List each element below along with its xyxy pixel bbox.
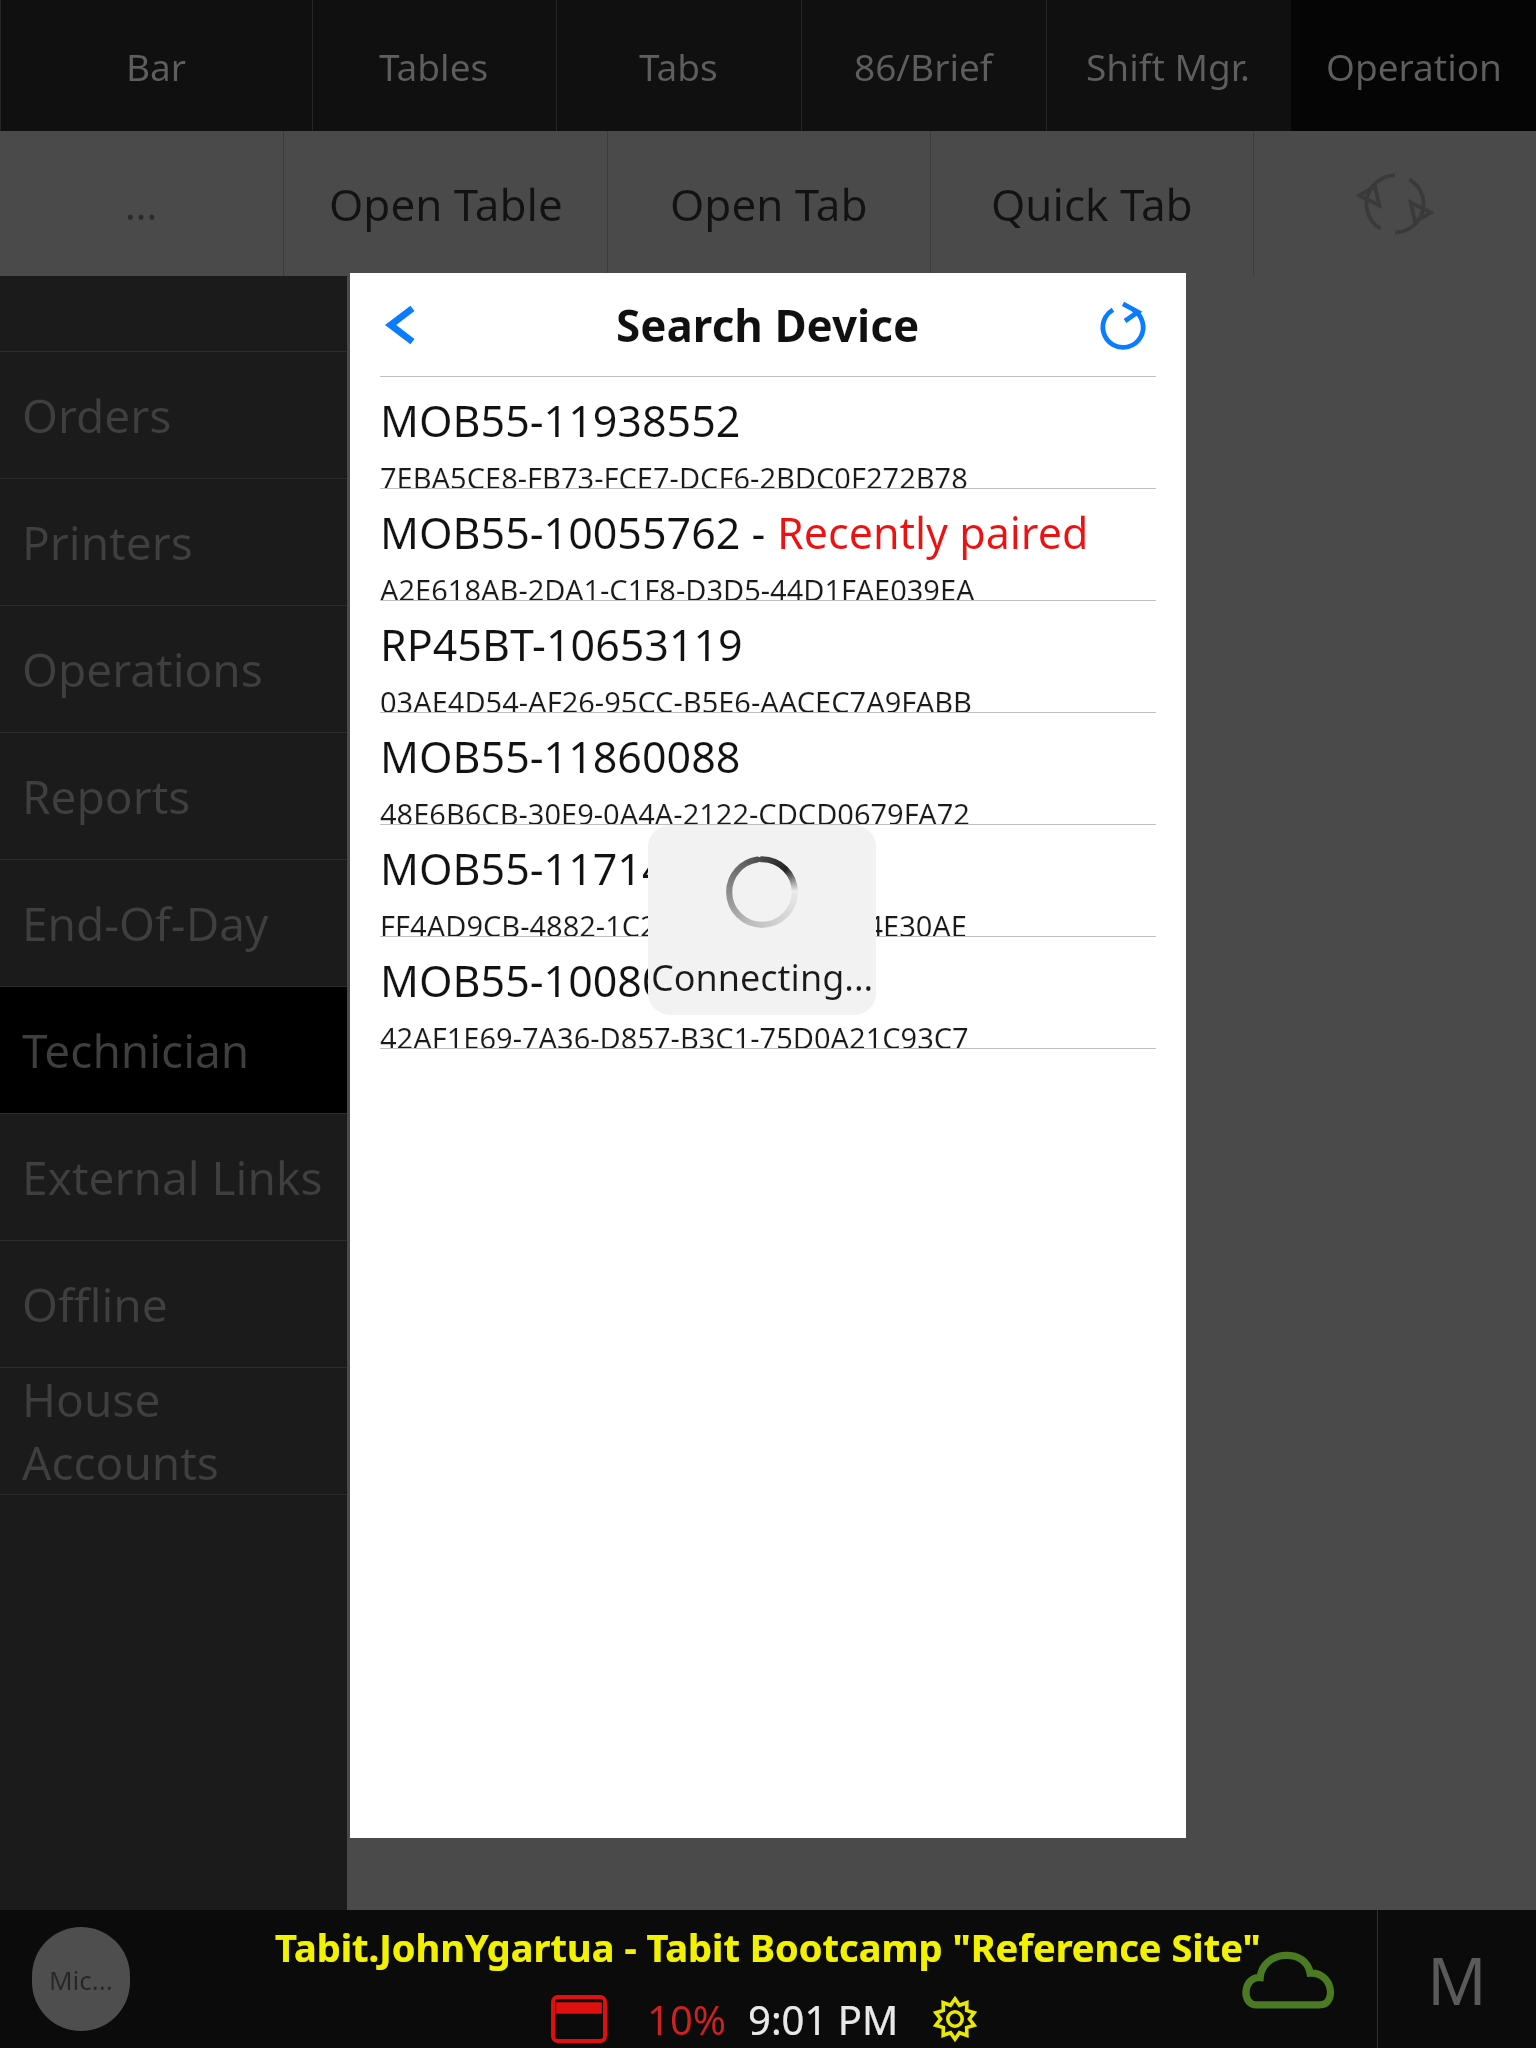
staticText: MOB55-11938552	[380, 391, 741, 450]
button[interactable]: Technician	[0, 987, 347, 1113]
button[interactable]: Printers	[0, 479, 347, 605]
button[interactable]: Offline	[0, 1241, 347, 1367]
button[interactable]: Bar	[0, 0, 312, 131]
button[interactable]: MOB55-11714987	[350, 825, 1186, 936]
staticText: RP45BT-10653119	[380, 615, 743, 674]
button[interactable]: MOB55-11860088	[350, 713, 1186, 824]
button[interactable]: RP45BT-10653119	[350, 601, 1186, 712]
staticText: Quick Tab	[991, 174, 1193, 234]
staticText: MOB55-10055762 -	[380, 503, 777, 562]
button[interactable]: Open Tab	[608, 131, 930, 276]
staticText: M	[1427, 1934, 1487, 2024]
staticText: 9:01 PM	[748, 1992, 899, 2046]
staticText: Operations	[22, 638, 263, 701]
staticText: Tabs	[639, 41, 718, 91]
button[interactable]: Tables	[312, 0, 556, 131]
staticText: 42AF1E69-7A36-D857-B3C1-75D0A21C93C7	[380, 1018, 969, 1048]
staticText: Orders	[22, 384, 172, 447]
staticText: 86/Brief	[854, 41, 993, 91]
button[interactable]: Reports	[0, 733, 347, 859]
staticText: Shift Mgr.	[1086, 41, 1251, 91]
button[interactable]: Mic...	[32, 1927, 130, 2031]
button[interactable]: Cloud status	[1201, 1910, 1377, 2048]
button[interactable]: Operation	[1291, 0, 1536, 131]
button[interactable]: House Accounts	[0, 1368, 347, 1494]
staticText: Mic...	[49, 1962, 113, 1997]
staticText: Tables	[379, 41, 489, 91]
staticText: FF4AD9CB-4882-1C2F-D4B7-A2CC5F4E30AE	[380, 906, 967, 936]
button[interactable]: End-Of-Day	[0, 860, 347, 986]
staticText: Operation	[1326, 41, 1502, 91]
staticText: Search Device	[616, 295, 920, 355]
button[interactable]: Shift Mgr.	[1046, 0, 1291, 131]
button[interactable]: 86/Brief	[801, 0, 1046, 131]
staticText: External Links	[22, 1146, 323, 1209]
staticText: Reports	[22, 765, 191, 828]
button[interactable]: Back	[362, 286, 440, 364]
staticText: 7EBA5CE8-FB73-FCE7-DCF6-2BDC0F272B78	[380, 458, 968, 488]
button[interactable]: MOB55-10080543	[350, 937, 1186, 1048]
staticText: Open Tab	[670, 174, 868, 234]
button[interactable]: Settings	[927, 1991, 983, 2047]
button[interactable]: MOB55-11938552	[350, 377, 1186, 488]
staticText: Printers	[22, 511, 193, 574]
button[interactable]: M	[1378, 1910, 1536, 2048]
staticText: 10%	[647, 1992, 726, 2046]
staticText: Open Table	[329, 174, 563, 234]
button[interactable]: Open Table	[284, 131, 607, 276]
button[interactable]: Quick Tab	[931, 131, 1253, 276]
staticText: Recently paired	[777, 503, 1089, 562]
staticText: Bar	[126, 41, 187, 91]
button[interactable]: External Links	[0, 1114, 347, 1240]
button[interactable]: Refresh	[1088, 290, 1158, 360]
staticText: A2E618AB-2DA1-C1F8-D3D5-44D1FAE039EA	[380, 570, 975, 600]
staticText: Offline	[22, 1273, 168, 1336]
staticText: Connecting...	[651, 953, 874, 1002]
button[interactable]: Tabs	[556, 0, 801, 131]
staticText: 48E6B6CB-30E9-0A4A-2122-CDCD0679FA72	[380, 794, 970, 824]
staticText: Tabit.JohnYgartua - Tabit Bootcamp "Refe…	[275, 1921, 1261, 1973]
button[interactable]: Orders	[0, 352, 347, 478]
staticText: MOB55-11860088	[380, 727, 741, 786]
staticText: House Accounts	[22, 1368, 347, 1494]
staticText: Technician	[22, 1019, 250, 1082]
staticText: MOB55-11714987	[380, 839, 741, 898]
button[interactable]: MOB55-10055762 -	[350, 489, 1186, 600]
staticText: End-Of-Day	[22, 892, 269, 955]
staticText: 03AE4D54-AF26-95CC-B5E6-AACEC7A9FABB	[380, 682, 972, 712]
button[interactable]: Operations	[0, 606, 347, 732]
staticText: MOB55-10080543	[380, 951, 741, 1010]
staticText: ...	[125, 177, 158, 231]
